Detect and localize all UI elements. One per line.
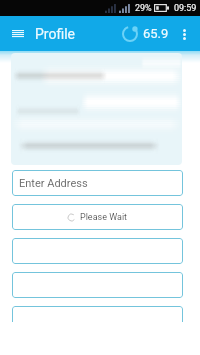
button[interactable]: Open navigation menu	[6, 22, 30, 46]
staticText: Profile	[35, 26, 76, 42]
staticText: Enter Address	[19, 177, 88, 190]
staticText: 09:59	[174, 3, 197, 14]
button[interactable]: Enter Address	[12, 170, 183, 196]
button[interactable]: Refresh	[118, 22, 142, 46]
staticText: 65.9	[143, 26, 169, 41]
button[interactable]	[12, 306, 183, 322]
button[interactable]: More options	[177, 21, 191, 47]
button[interactable]: Please Wait	[12, 204, 183, 230]
staticText: Please Wait	[80, 212, 128, 223]
button[interactable]	[12, 238, 183, 264]
button[interactable]	[12, 272, 183, 298]
staticText: 29%	[135, 3, 152, 14]
